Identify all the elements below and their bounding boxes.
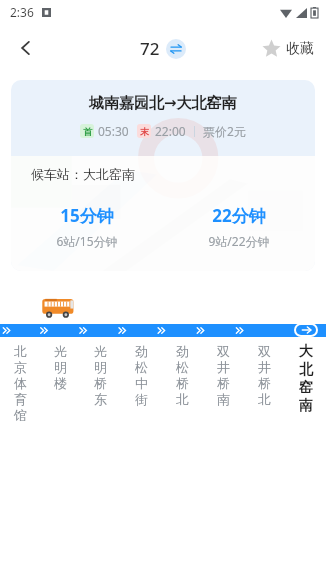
staticText: 楼 [54,375,67,391]
staticText: 街 [135,391,148,407]
button[interactable]: Route end [296,325,316,335]
staticText: 双 [258,343,271,359]
staticText: 南 [217,391,230,407]
button[interactable]: 收藏 [260,33,316,64]
button[interactable]: 72 [140,37,186,60]
staticText: 馆 [14,407,27,423]
staticText: 05:30 [98,123,129,139]
staticText: 2:36 [10,4,34,20]
button[interactable]: Back [6,28,46,68]
staticText: 双 [217,343,230,359]
staticText: 井 [258,359,271,375]
staticText: 大 [299,343,313,361]
button[interactable]: 劲 [121,343,162,443]
staticText: 南 [299,397,313,415]
button[interactable]: 北 [0,343,40,443]
button[interactable]: 光 [40,343,80,443]
staticText: 桥 [94,375,107,391]
staticText: 22:00 [155,123,186,139]
staticText: 光 [94,343,107,359]
staticText: 72 [140,37,160,60]
staticText: 首 [83,126,92,137]
staticText: 体 [14,375,27,391]
staticText: 9站/22分钟 [208,233,270,249]
button[interactable]: 劲 [162,343,203,443]
staticText: 光 [54,343,67,359]
staticText: 劲 [135,343,148,359]
staticText: 22分钟 [212,204,266,227]
staticText: 桥 [217,375,230,391]
staticText: 北 [14,343,27,359]
button[interactable]: Bus position [40,296,78,320]
staticText: 15分钟 [60,204,114,227]
staticText: 6站/15分钟 [56,233,118,249]
staticText: 中 [135,375,148,391]
button[interactable]: 城南嘉园北→大北窑南 [11,80,315,271]
staticText: 城南嘉园北→大北窑南 [89,94,237,113]
staticText: 京 [14,359,27,375]
button[interactable]: 光 [80,343,121,443]
button[interactable]: 双 [203,343,244,443]
staticText: 松 [176,359,189,375]
staticText: 窑 [299,379,313,397]
staticText: 东 [94,391,107,407]
button[interactable]: 双 [244,343,285,443]
staticText: 候车站：大北窑南 [31,166,135,182]
staticText: 末 [140,126,149,137]
staticText: 北 [176,391,189,407]
staticText: 育 [14,391,27,407]
button[interactable]: 大 [285,343,326,443]
staticText: 票价2元 [203,123,246,139]
staticText: 收藏 [286,40,314,58]
staticText: 桥 [176,375,189,391]
staticText: 北 [299,361,313,379]
staticText: 北 [258,391,271,407]
staticText: 明 [94,359,107,375]
staticText: 劲 [176,343,189,359]
staticText: 桥 [258,375,271,391]
other: Swap direction [166,39,186,59]
staticText: 井 [217,359,230,375]
staticText: 松 [135,359,148,375]
staticText: 明 [54,359,67,375]
